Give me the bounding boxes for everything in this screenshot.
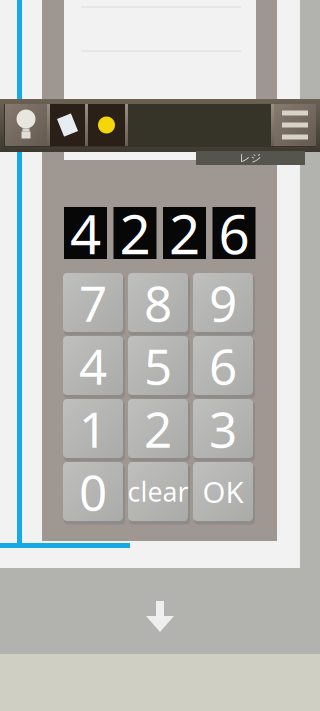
- staticText: 2: [169, 197, 200, 269]
- staticText: 9: [209, 270, 237, 335]
- staticText: 5: [144, 333, 172, 398]
- button[interactable]: OK: [193, 462, 254, 523]
- button[interactable]: 6: [193, 336, 254, 397]
- staticText: 7: [79, 270, 107, 335]
- button[interactable]: Light bulb: [5, 104, 47, 146]
- staticText: 6: [209, 333, 237, 398]
- button[interactable]: 1: [63, 399, 124, 460]
- button[interactable]: 4: [63, 336, 124, 397]
- staticText: 0: [79, 459, 107, 524]
- button[interactable]: Yellow ball: [88, 104, 125, 146]
- staticText: 2: [119, 197, 150, 269]
- staticText: clear: [127, 474, 188, 509]
- button[interactable]: clear: [128, 462, 189, 523]
- button[interactable]: 9: [193, 273, 254, 334]
- staticText: 4: [70, 197, 101, 269]
- button[interactable]: 0: [63, 462, 124, 523]
- button[interactable]: Note: [50, 104, 85, 146]
- button[interactable]: 3: [193, 399, 254, 460]
- staticText: 1: [79, 396, 107, 461]
- staticText: 6: [218, 197, 249, 269]
- staticText: 4: [79, 333, 107, 398]
- staticText: 2: [144, 396, 172, 461]
- staticText: OK: [202, 472, 243, 511]
- staticText: 8: [144, 270, 172, 335]
- button[interactable]: Menu: [274, 104, 316, 146]
- button[interactable]: Go back: [145, 601, 175, 632]
- button[interactable]: 8: [128, 273, 189, 334]
- staticText: レジ: [239, 151, 261, 164]
- button[interactable]: 7: [63, 273, 124, 334]
- button[interactable]: 5: [128, 336, 189, 397]
- button[interactable]: 2: [128, 399, 189, 460]
- staticText: 3: [209, 396, 237, 461]
